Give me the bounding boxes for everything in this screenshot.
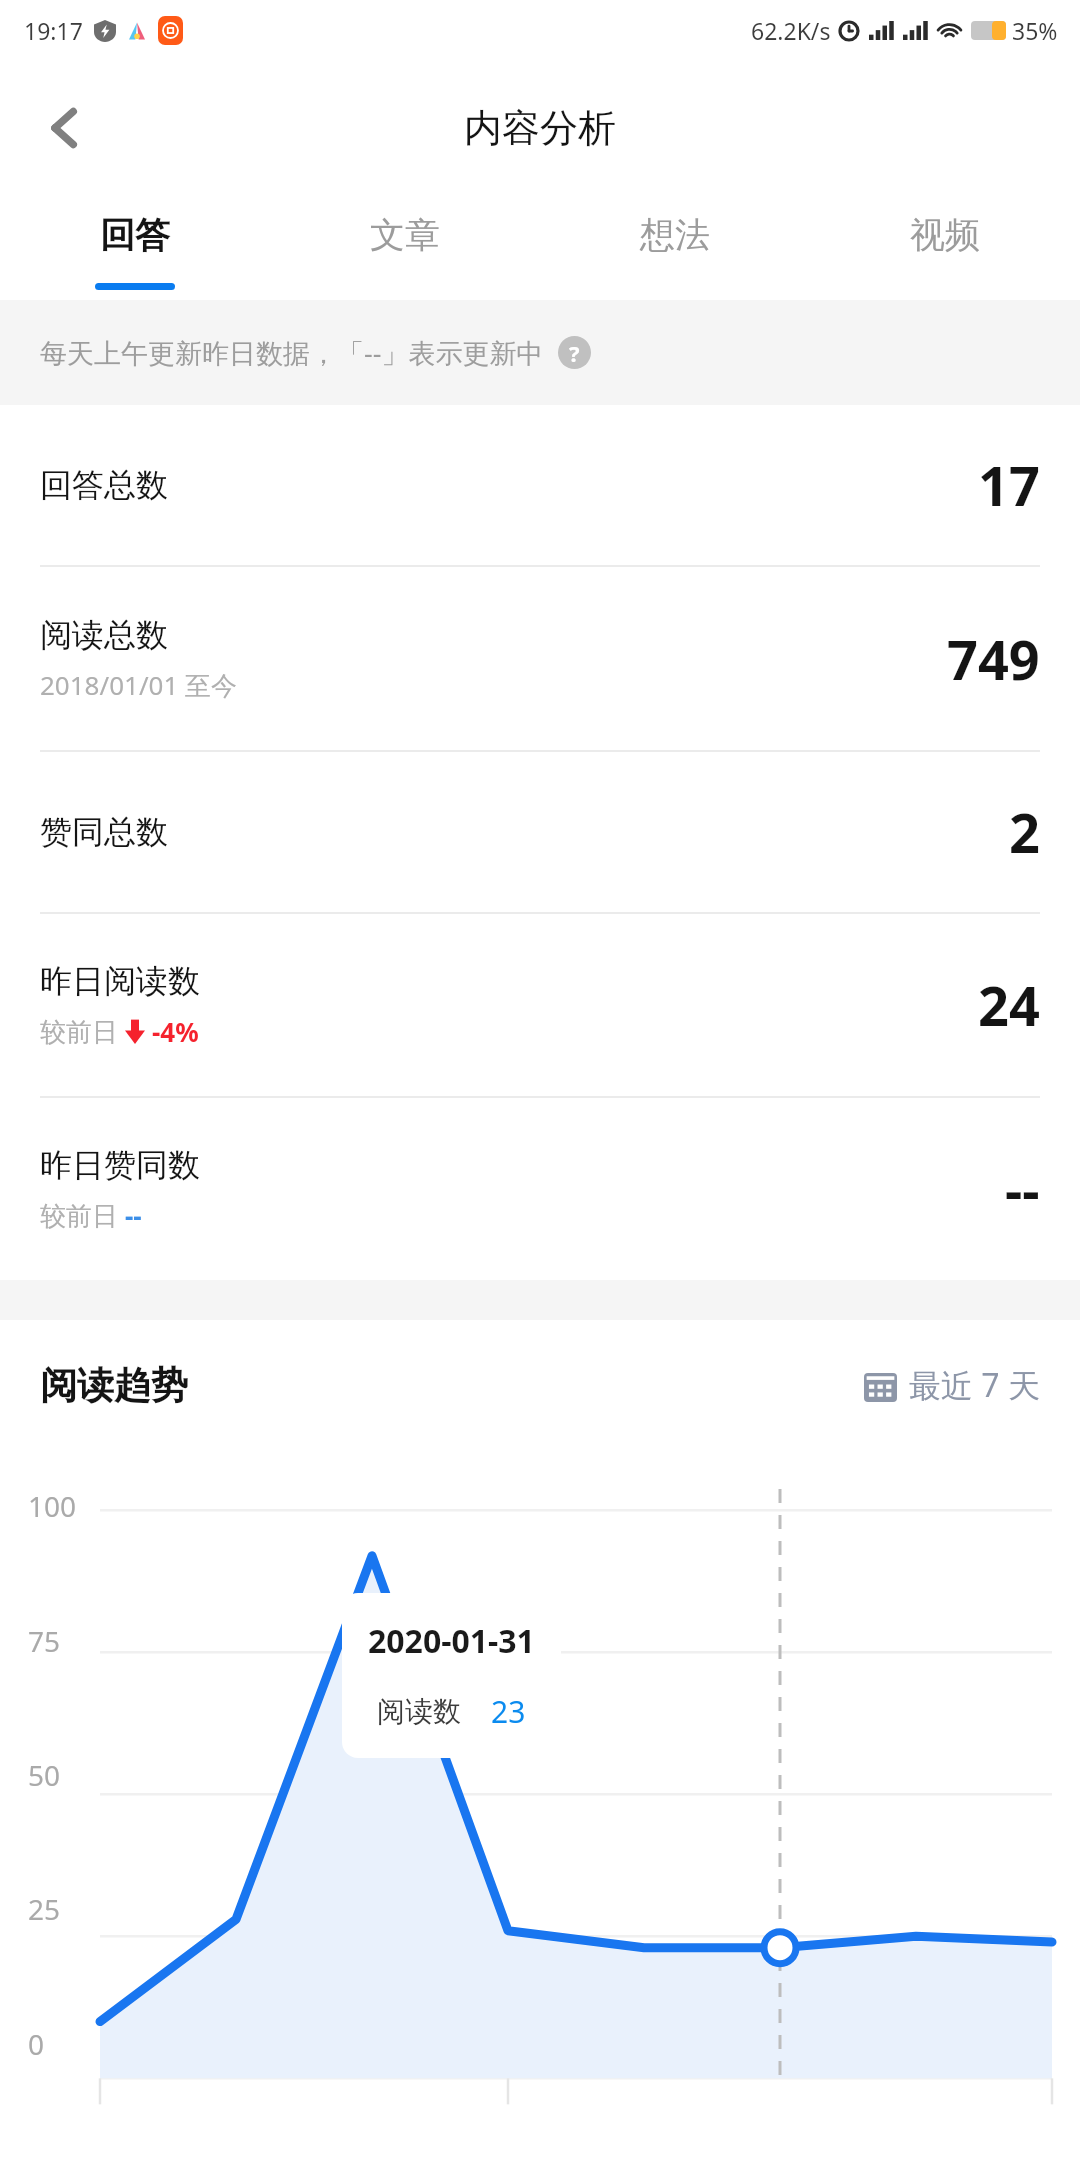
staticText: -- [1005, 1152, 1040, 1226]
staticText: 回答总数 [40, 465, 168, 505]
staticText: 35% [1012, 15, 1058, 46]
staticText: 62.2K/s [751, 15, 831, 46]
staticText: 100 [28, 1487, 77, 1525]
other: Help [558, 336, 591, 369]
staticText: 25 [28, 1890, 61, 1928]
staticText: 想法 [640, 213, 710, 257]
staticText: 昨日阅读数 [40, 961, 200, 1001]
button[interactable]: 想法 [540, 195, 810, 300]
staticText: 回答 [100, 213, 170, 257]
staticText: 2018/01/01 至今 [40, 667, 238, 703]
staticText: 阅读趋势 [40, 1362, 188, 1409]
staticText: 最近 7 天 [909, 1363, 1040, 1407]
staticText: 23 [491, 1691, 526, 1732]
button[interactable]: 阅读总数 [0, 567, 1080, 750]
button[interactable]: 昨日阅读数 [0, 914, 1080, 1096]
staticText: 较前日 [40, 1197, 125, 1233]
staticText: 2 [1009, 795, 1040, 869]
staticText: 75 [28, 1622, 61, 1660]
staticText: 2020-01-31 [368, 1619, 535, 1663]
staticText: 较前日 [40, 1013, 125, 1049]
staticText: 24 [978, 968, 1040, 1042]
staticText: 昨日赞同数 [40, 1145, 200, 1185]
staticText: 赞同总数 [40, 812, 168, 852]
button[interactable]: Back [22, 85, 108, 171]
button[interactable]: 最近 7 天 [864, 1363, 1040, 1407]
button[interactable]: 视频 [810, 195, 1080, 300]
staticText: 阅读数 [377, 1694, 461, 1729]
button[interactable]: 回答总数 [0, 405, 1080, 565]
staticText: ? [569, 338, 580, 368]
staticText: 视频 [910, 213, 980, 257]
staticText: -4% [152, 1014, 199, 1049]
staticText: 749 [947, 622, 1040, 696]
staticText: 19:17 [24, 15, 83, 46]
staticText: 17 [978, 448, 1040, 522]
button[interactable]: 文章 [270, 195, 540, 300]
button[interactable]: 赞同总数 [0, 752, 1080, 912]
staticText: 50 [28, 1756, 61, 1794]
staticText: 每天上午更新昨日数据，「--」表示更新中 [40, 334, 544, 371]
button[interactable]: 回答 [0, 195, 270, 300]
staticText: -- [125, 1198, 142, 1233]
staticText: 文章 [370, 213, 440, 257]
staticText: 0 [28, 2025, 45, 2063]
staticText: 内容分析 [464, 104, 616, 152]
staticText: 阅读总数 [40, 615, 168, 655]
button[interactable]: 每天上午更新昨日数据，「--」表示更新中 [0, 300, 1080, 405]
button[interactable]: 昨日赞同数 [0, 1098, 1080, 1280]
